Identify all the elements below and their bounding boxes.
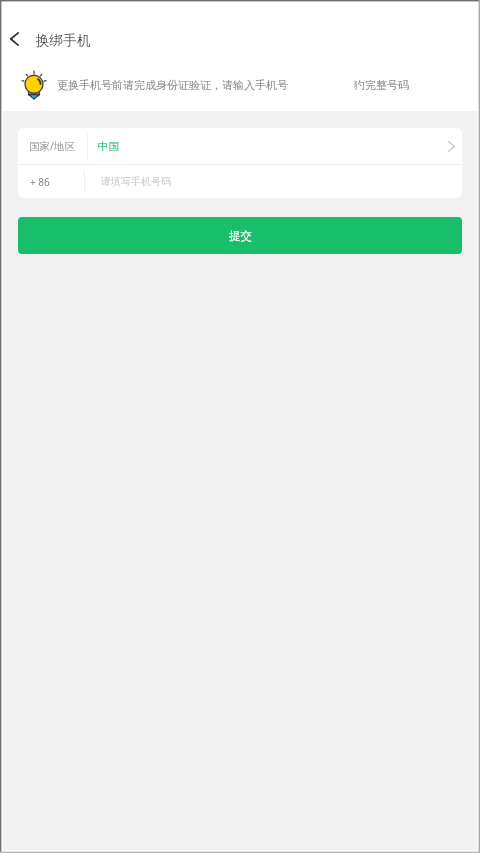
staticText: 中国	[98, 140, 119, 153]
button[interactable]: Back	[2, 20, 32, 58]
staticText: 提交	[229, 229, 252, 243]
button[interactable]: 国家/地区	[18, 128, 462, 164]
button[interactable]: 提交	[18, 217, 462, 254]
staticText: 请填写手机号码	[101, 175, 171, 188]
button[interactable]: + 86	[18, 165, 462, 198]
staticText: 国家/地区	[29, 139, 75, 153]
staticText: 更换手机号前请完成身份证验证，请输入手机号 犳完整号码	[57, 77, 409, 92]
staticText: 换绑手机	[36, 32, 91, 49]
staticText: + 86	[30, 175, 50, 189]
